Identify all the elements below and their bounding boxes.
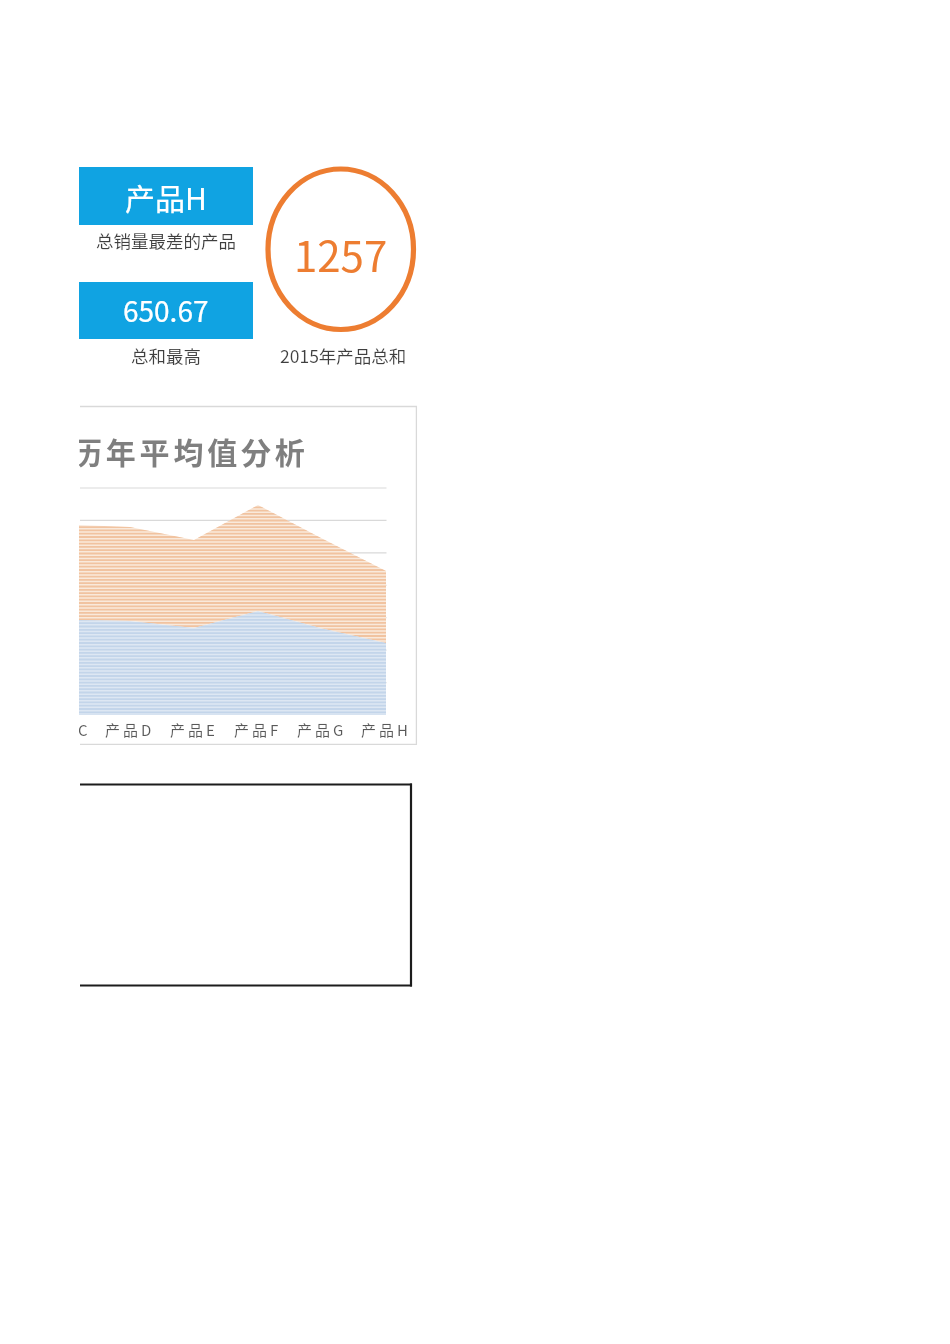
staticText: 产品H (125, 175, 207, 218)
staticText: 历年平均值分析 (72, 429, 309, 472)
staticText: 产品C (42, 719, 91, 741)
staticText: 1257 (294, 223, 388, 284)
staticText: 650.67 (123, 290, 209, 331)
staticText: 总销量最差的产品 (96, 228, 236, 252)
staticText: 产品D (105, 719, 155, 741)
staticText: 产品F (234, 719, 282, 741)
staticText: 产品E (170, 719, 218, 741)
staticText: 总和最高 (131, 343, 201, 367)
button[interactable]: 650.67 (79, 282, 253, 339)
staticText: 产品G (297, 719, 347, 741)
staticText: 产品H (361, 719, 411, 741)
staticText: 2015年产品总和 (280, 343, 407, 367)
button[interactable]: 产品H (79, 167, 253, 225)
